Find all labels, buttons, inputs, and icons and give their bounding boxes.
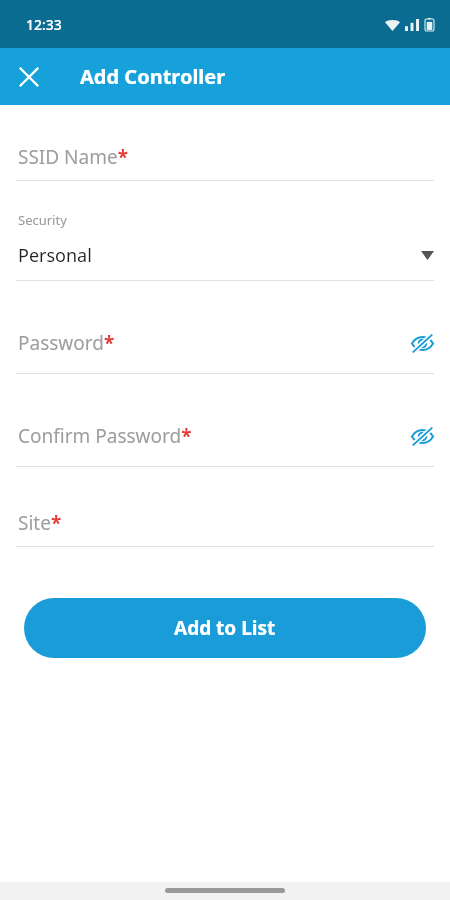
staticText: Add Controller [80, 63, 226, 90]
button[interactable]: Site* [0, 510, 450, 547]
button[interactable]: Add to List [24, 598, 426, 658]
staticText: Confirm Password* [18, 423, 192, 449]
staticText: SSID Name* [18, 144, 128, 170]
button[interactable]: SSID Name* [0, 144, 450, 181]
staticText: Site* [18, 510, 62, 536]
staticText: 12:33 [26, 15, 62, 34]
staticText: Password* [18, 330, 115, 356]
button[interactable]: Personal [0, 243, 450, 281]
staticText: Security [18, 211, 67, 229]
staticText: Personal [18, 243, 421, 268]
button[interactable]: Show password [402, 416, 442, 456]
button[interactable]: Password* [0, 323, 450, 374]
button[interactable]: Close [8, 56, 50, 98]
button[interactable]: Show password [402, 323, 442, 363]
button[interactable]: Confirm Password* [0, 416, 450, 467]
staticText: Add to List [174, 615, 276, 641]
